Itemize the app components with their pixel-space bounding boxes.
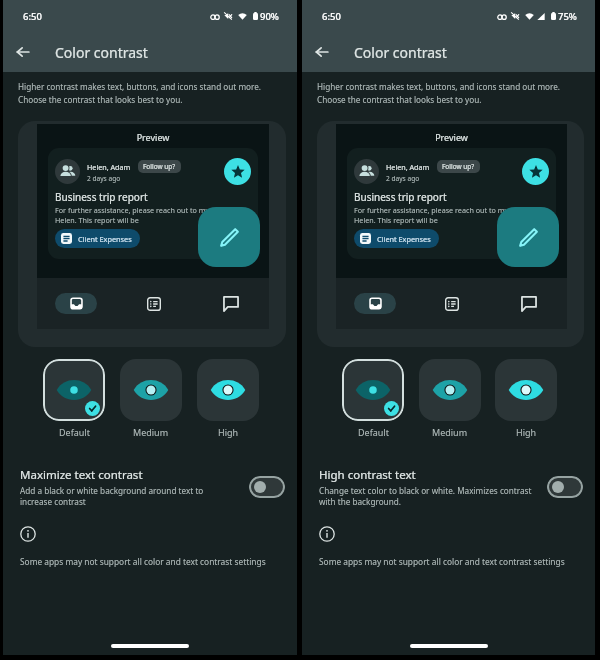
button[interactable]: Chat	[490, 278, 567, 329]
button[interactable]: Compose	[198, 207, 260, 267]
staticText: Higher contrast makes text, buttons, and…	[317, 81, 561, 106]
staticText: Follow up?	[442, 162, 475, 171]
staticText: Higher contrast makes text, buttons, and…	[18, 81, 262, 106]
button[interactable]: Inbox	[37, 278, 115, 329]
staticText: Business trip report	[55, 190, 148, 204]
staticText: Maximize text contrast	[20, 467, 143, 483]
staticText: 6:50	[322, 10, 341, 23]
button[interactable]: Client Expenses	[55, 229, 140, 248]
staticText: Color contrast	[354, 43, 447, 62]
button[interactable]: Home	[410, 644, 488, 648]
staticText: Client Expenses	[377, 234, 431, 244]
staticText: Business trip report	[354, 190, 447, 204]
staticText: Medium	[432, 426, 468, 438]
button[interactable]	[197, 359, 259, 421]
button[interactable]: Maximize text contrast	[249, 476, 285, 498]
button[interactable]: Home	[111, 644, 189, 648]
staticText: Follow up?	[143, 162, 176, 171]
button[interactable]: Client Expenses	[354, 229, 439, 248]
staticText: Some apps may not support all color and …	[319, 556, 565, 567]
button[interactable]: Back	[11, 40, 35, 64]
staticText: Default	[358, 426, 389, 438]
button[interactable]	[120, 359, 182, 421]
button[interactable]: Star	[522, 158, 549, 185]
button[interactable]	[43, 359, 105, 421]
button[interactable]: Compose	[497, 207, 559, 267]
staticText: For further assistance, please reach out…	[354, 205, 530, 225]
button[interactable]: High contrast text	[547, 476, 583, 498]
staticText: Change text color to black or white. Max…	[319, 485, 532, 507]
button[interactable]: Articles	[115, 278, 192, 329]
staticText: Helen, Adam	[386, 162, 430, 172]
staticText: Color contrast	[55, 43, 148, 62]
staticText: High	[516, 426, 537, 438]
staticText: Preview	[336, 131, 567, 143]
staticText: Client Expenses	[78, 234, 132, 244]
button[interactable]: Maximize text contrast	[3, 467, 297, 507]
button[interactable]	[419, 359, 481, 421]
staticText: Default	[59, 426, 90, 438]
button[interactable]	[495, 359, 557, 421]
button[interactable]: Inbox	[336, 278, 413, 329]
staticText: Some apps may not support all color and …	[20, 556, 266, 567]
staticText: Medium	[133, 426, 169, 438]
button[interactable]	[342, 359, 404, 421]
staticText: Add a black or white background around t…	[20, 485, 204, 507]
button[interactable]: Star	[224, 158, 251, 185]
staticText: High contrast text	[319, 467, 416, 483]
staticText: 2 days ago	[87, 174, 121, 183]
button[interactable]: Chat	[192, 278, 269, 329]
staticText: 75%	[558, 10, 577, 23]
staticText: 2 days ago	[386, 174, 420, 183]
staticText: Preview	[37, 131, 269, 143]
button[interactable]: Articles	[413, 278, 490, 329]
staticText: Helen, Adam	[87, 162, 131, 172]
button[interactable]: Back	[310, 40, 334, 64]
staticText: For further assistance, please reach out…	[55, 205, 231, 225]
staticText: High	[218, 426, 239, 438]
button[interactable]: High contrast text	[302, 467, 595, 507]
staticText: 6:50	[23, 10, 42, 23]
staticText: 90%	[260, 10, 279, 23]
